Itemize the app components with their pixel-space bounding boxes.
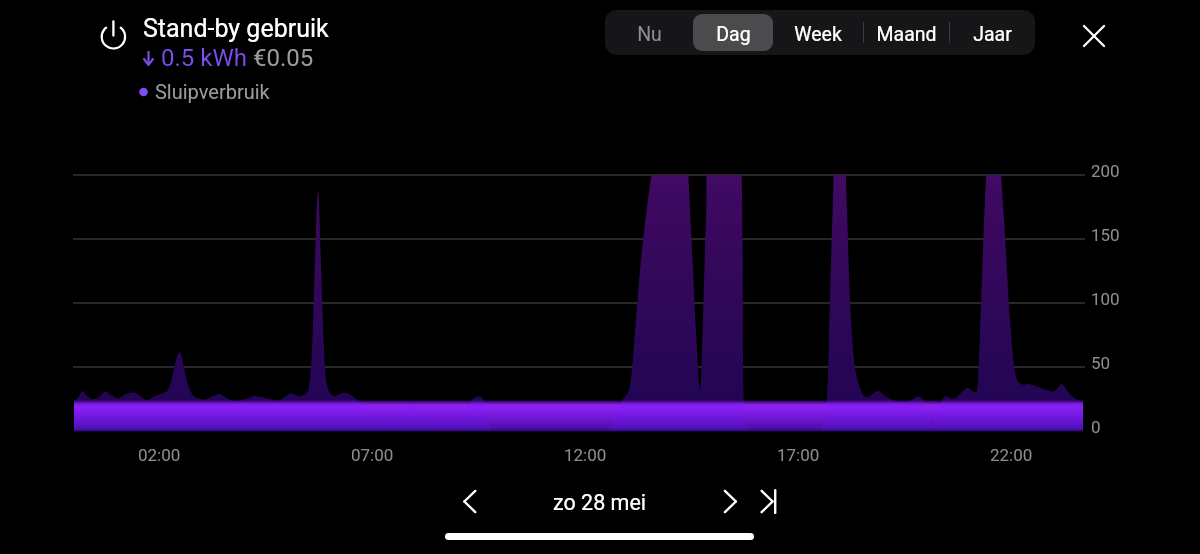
button[interactable]: Volgende dag — [712, 480, 756, 524]
staticText: 200 — [1091, 161, 1120, 181]
staticText: 12:00 — [564, 445, 607, 465]
staticText: 50 — [1091, 353, 1111, 373]
staticText: Week — [794, 23, 842, 46]
staticText: 0 — [1091, 417, 1101, 437]
staticText: €0.05 — [253, 44, 314, 72]
staticText: 100 — [1091, 289, 1120, 309]
staticText: 07:00 — [351, 445, 394, 465]
staticText: 02:00 — [138, 445, 181, 465]
button[interactable]: Dag — [693, 14, 773, 51]
staticText: Jaar — [973, 23, 1012, 46]
staticText: Sluipverbruik — [150, 80, 270, 103]
staticText: Nu — [637, 23, 662, 46]
button[interactable]: Vorige dag — [448, 480, 492, 524]
button[interactable]: Week — [773, 10, 863, 55]
staticText: Stand-by gebruik — [143, 14, 329, 43]
button[interactable]: Nu — [605, 10, 693, 55]
button[interactable]: Laatste dag — [752, 480, 796, 524]
button[interactable]: Jaar — [950, 10, 1035, 55]
staticText: 17:00 — [777, 445, 820, 465]
staticText: Dag — [716, 23, 751, 46]
staticText: 22:00 — [990, 445, 1033, 465]
staticText: Maand — [876, 23, 937, 46]
button[interactable]: Stand-by gebruik — [96, 18, 132, 54]
staticText: 150 — [1091, 225, 1120, 245]
staticText: zo 28 mei — [553, 490, 647, 515]
button[interactable]: Sluiten — [1073, 15, 1114, 56]
button[interactable]: Maand — [864, 10, 949, 55]
staticText: 0.5 kWh — [155, 44, 253, 72]
